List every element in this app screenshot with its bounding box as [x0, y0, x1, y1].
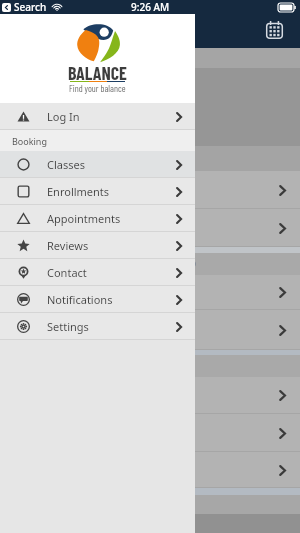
staticText: Enrollments — [47, 184, 110, 199]
button[interactable]: Contact — [0, 259, 195, 286]
staticText: 0 — [190, 257, 196, 271]
staticText: BALANCE — [68, 62, 127, 84]
staticText: Appointments — [47, 211, 121, 226]
staticText: Booking — [12, 135, 47, 147]
staticText: Settings — [47, 319, 89, 334]
button[interactable]: Appointments — [0, 205, 195, 232]
button[interactable]: Settings — [0, 313, 195, 340]
staticText: Find your balance — [69, 83, 126, 94]
staticText: Search — [14, 0, 47, 14]
staticText: Reviews — [47, 238, 89, 253]
button[interactable]: Enrollments — [0, 178, 195, 205]
staticText: Classes — [47, 157, 85, 172]
staticText: Contact — [47, 265, 87, 280]
staticText: Log In — [47, 109, 80, 124]
button[interactable]: Notifications — [0, 286, 195, 313]
button[interactable]: Log In — [0, 103, 195, 130]
button[interactable]: Reviews — [0, 232, 195, 259]
button[interactable]: Calendar — [257, 13, 291, 47]
staticText: Notifications — [47, 292, 113, 307]
button[interactable]: Classes — [0, 151, 195, 178]
staticText: 9:26 AM — [131, 0, 170, 14]
